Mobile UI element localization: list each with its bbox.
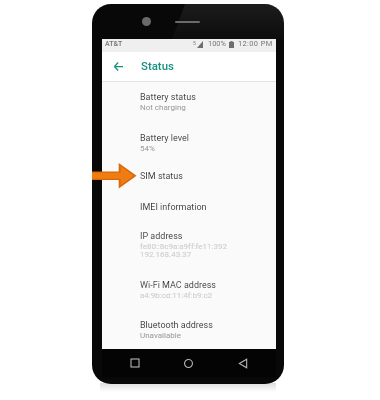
button[interactable]: Navigate up xyxy=(106,52,130,81)
staticText: Battery level xyxy=(140,133,189,144)
staticText: 54% xyxy=(140,144,155,153)
staticText: Bluetooth address xyxy=(140,320,213,331)
staticText: 192.168.43.37 xyxy=(140,250,192,259)
button[interactable]: Battery status xyxy=(102,82,276,123)
button[interactable]: IMEI information xyxy=(102,192,276,221)
button[interactable]: SIM status xyxy=(102,161,276,192)
button[interactable]: Recent apps xyxy=(122,349,148,377)
staticText: fe80::8c9a:a9ff:fe11:392 xyxy=(140,242,227,251)
staticText: Battery status xyxy=(140,92,196,103)
staticText: Unavailable xyxy=(140,331,181,340)
button[interactable]: Back xyxy=(230,349,256,377)
button[interactable]: Bluetooth address xyxy=(102,310,276,349)
staticText: SIM status xyxy=(140,171,183,182)
staticText: a4:9b:cd:11:4f:b9:c2 xyxy=(140,291,213,300)
staticText: 12:00 PM xyxy=(238,39,273,48)
staticText: IP address xyxy=(140,231,183,242)
button[interactable]: Home xyxy=(175,349,201,377)
staticText: 100% xyxy=(208,39,226,48)
button[interactable]: Wi-Fi MAC address xyxy=(102,270,276,310)
staticText: 5 xyxy=(193,40,196,46)
button[interactable]: IP address xyxy=(102,221,276,270)
staticText: AT&T xyxy=(105,40,123,48)
staticText: Wi-Fi MAC address xyxy=(140,280,216,291)
staticText: Not charging xyxy=(140,103,186,112)
staticText: Status xyxy=(141,59,174,72)
button[interactable]: Battery level xyxy=(102,123,276,161)
staticText: IMEI information xyxy=(140,202,207,213)
